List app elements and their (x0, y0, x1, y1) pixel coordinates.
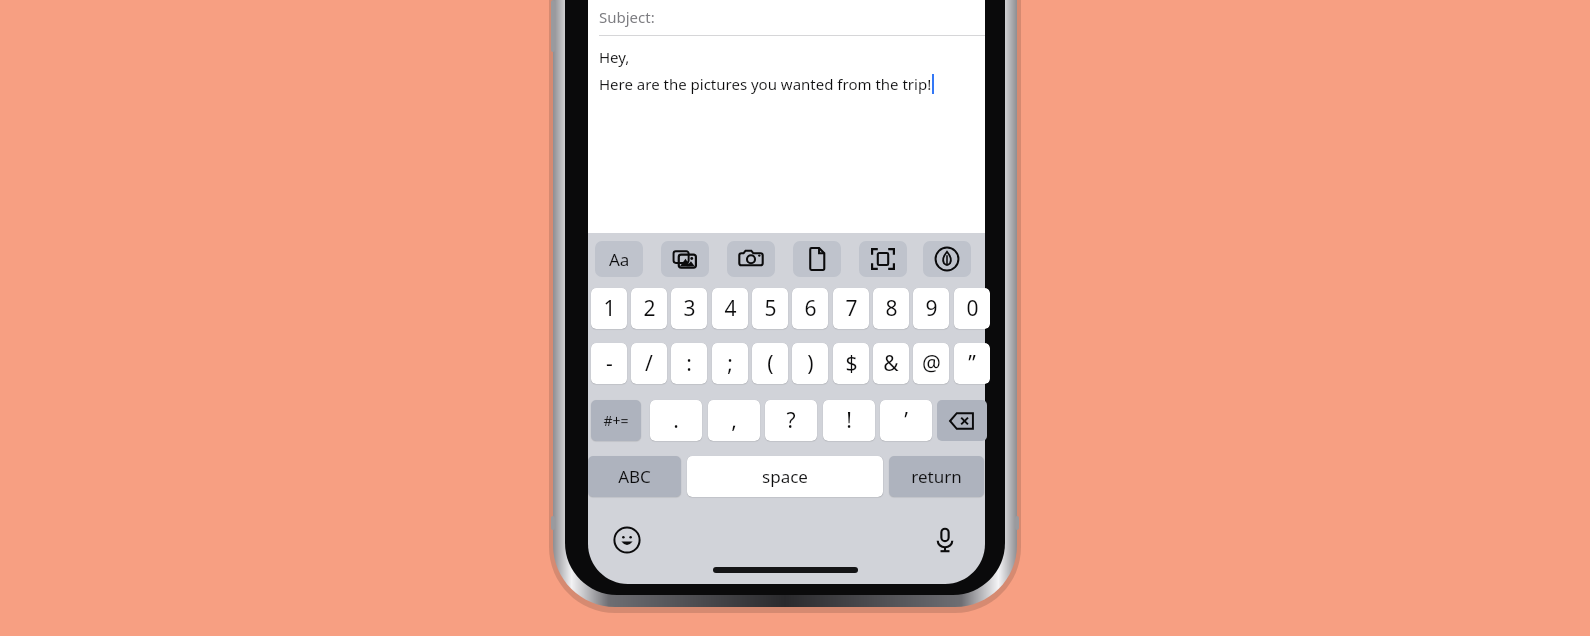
button[interactable]: Text format (595, 241, 643, 277)
button[interactable]: 6 (792, 288, 828, 329)
button[interactable]: : (671, 343, 707, 384)
button[interactable]: ! (823, 400, 875, 441)
staticText: - (606, 349, 613, 378)
staticText: 9 (925, 294, 938, 323)
button[interactable]: @ (913, 343, 949, 384)
staticText: ABC (618, 465, 651, 488)
staticText: . (673, 406, 679, 435)
button[interactable]: Emoji (610, 523, 643, 556)
staticText: 2 (643, 294, 656, 323)
button[interactable]: Hey, (599, 47, 934, 94)
staticText: / (645, 349, 653, 378)
button[interactable]: 1 (591, 288, 627, 329)
button[interactable]: 8 (873, 288, 909, 329)
button[interactable]: Backspace (937, 400, 987, 441)
button[interactable]: ) (792, 343, 828, 384)
staticText: Subject: (599, 7, 655, 27)
button[interactable]: 4 (712, 288, 748, 329)
button[interactable]: ABC (588, 456, 681, 497)
button[interactable]: Subject: (599, 3, 979, 31)
staticText: Hey, (599, 47, 630, 67)
button[interactable]: 3 (671, 288, 707, 329)
button[interactable]: ( (752, 343, 788, 384)
staticText: $ (845, 349, 858, 378)
staticText: Here are the pictures you wanted from th… (599, 74, 932, 94)
button[interactable]: - (591, 343, 627, 384)
staticText: return (911, 465, 962, 488)
button[interactable]: Camera (727, 241, 775, 277)
button[interactable]: Photos (661, 241, 709, 277)
button[interactable]: space (687, 456, 883, 497)
button[interactable]: . (650, 400, 702, 441)
staticText: ’ (904, 406, 908, 435)
button[interactable]: $ (833, 343, 869, 384)
staticText: 8 (885, 294, 898, 323)
button[interactable]: Dictation (928, 523, 961, 556)
staticText: space (762, 465, 808, 488)
staticText: ? (786, 406, 796, 435)
button[interactable]: 9 (913, 288, 949, 329)
button[interactable]: ” (954, 343, 990, 384)
staticText: ( (767, 349, 774, 378)
staticText: : (686, 349, 692, 378)
button[interactable]: & (873, 343, 909, 384)
staticText: 6 (804, 294, 817, 323)
staticText: ! (846, 406, 852, 435)
staticText: ; (727, 349, 733, 378)
button[interactable]: , (708, 400, 760, 441)
staticText: & (883, 349, 899, 378)
staticText: , (731, 406, 737, 435)
staticText: 5 (764, 294, 777, 323)
staticText: Aa (609, 248, 630, 271)
button[interactable]: 7 (833, 288, 869, 329)
button[interactable]: ? (765, 400, 817, 441)
button[interactable]: 5 (752, 288, 788, 329)
staticText: @ (922, 349, 941, 378)
staticText: ) (807, 349, 814, 378)
staticText: 3 (683, 294, 696, 323)
staticText: 7 (845, 294, 858, 323)
button[interactable]: return (889, 456, 984, 497)
staticText: 4 (724, 294, 737, 323)
staticText: 1 (603, 294, 616, 323)
button[interactable]: ; (712, 343, 748, 384)
staticText: 0 (966, 294, 979, 323)
staticText: ” (968, 349, 976, 378)
button[interactable]: / (631, 343, 667, 384)
button[interactable]: #+= (591, 400, 641, 441)
button[interactable]: 0 (954, 288, 990, 329)
button[interactable]: Markup (923, 241, 971, 277)
button[interactable]: 2 (631, 288, 667, 329)
button[interactable]: Document (793, 241, 841, 277)
button[interactable]: ’ (880, 400, 932, 441)
staticText: #+= (603, 411, 629, 430)
button[interactable]: Scan document (859, 241, 907, 277)
